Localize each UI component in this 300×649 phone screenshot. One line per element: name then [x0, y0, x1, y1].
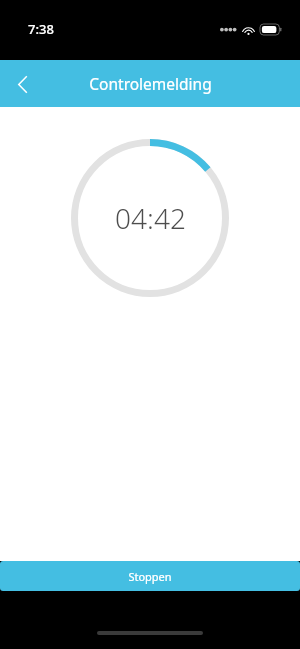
staticText: Stoppen	[128, 569, 172, 584]
staticText: Controlemelding	[89, 73, 212, 94]
staticText: 7:38	[28, 20, 54, 38]
button[interactable]: Stoppen	[0, 561, 300, 591]
button[interactable]: Back	[0, 62, 44, 106]
staticText: 04:42	[115, 199, 186, 237]
